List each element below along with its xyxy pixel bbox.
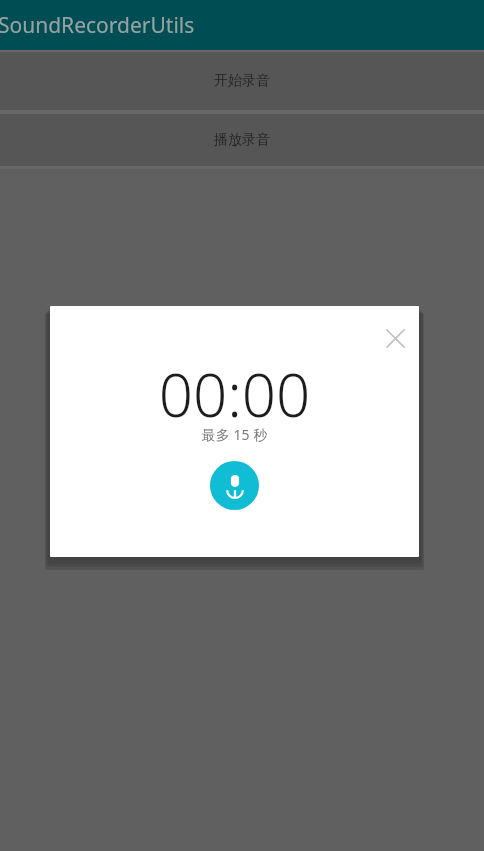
- button[interactable]: 播放录音: [0, 114, 484, 166]
- staticText: 播放录音: [214, 131, 270, 149]
- button[interactable]: Close: [377, 320, 413, 356]
- staticText: SoundRecorderUtils: [0, 11, 195, 40]
- staticText: 00:00: [50, 353, 419, 435]
- button[interactable]: 开始录音: [0, 52, 484, 110]
- button[interactable]: Start recording: [210, 461, 259, 510]
- staticText: 开始录音: [214, 72, 270, 90]
- staticText: 最多 15 秒: [50, 425, 419, 444]
